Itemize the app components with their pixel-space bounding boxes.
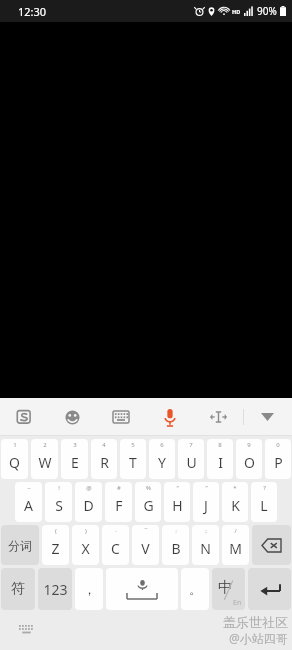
button[interactable]: Space [106, 568, 178, 610]
button[interactable]: ¯ [132, 525, 159, 565]
staticText: P [274, 453, 283, 472]
button[interactable]: 2 [31, 439, 58, 479]
button[interactable]: 123 [38, 568, 72, 610]
staticText: ) [85, 527, 87, 535]
staticText: 90% [257, 4, 277, 18]
staticText: * [233, 484, 237, 492]
button[interactable]: Sogou [0, 398, 48, 436]
staticText: / [234, 527, 237, 535]
button[interactable]: 6 [149, 439, 175, 479]
staticText: 1 [13, 441, 17, 449]
staticText: 8 [218, 441, 222, 449]
button[interactable]: ( [42, 525, 69, 565]
staticText: ; [205, 527, 207, 535]
staticText: ! [58, 484, 60, 492]
button[interactable]: 0 [265, 439, 291, 479]
button[interactable]: ; [192, 525, 219, 565]
button[interactable]: ! [45, 482, 72, 522]
staticText: Z [51, 539, 60, 558]
staticText: 4 [102, 441, 106, 449]
button[interactable]: @ [75, 482, 102, 522]
button[interactable]: ” [193, 482, 219, 522]
button[interactable]: ， [75, 568, 103, 610]
staticText: J [204, 496, 208, 515]
button[interactable]: 4 [91, 439, 117, 479]
button[interactable]: Hide keyboard [243, 398, 292, 436]
button[interactable]: 7 [178, 439, 204, 479]
button[interactable]: % [135, 482, 161, 522]
staticText: % [146, 484, 151, 492]
staticText: 123 [43, 580, 68, 599]
other: Backspace [252, 525, 291, 565]
staticText: 12:30 [18, 4, 47, 19]
staticText: 分词 [8, 538, 32, 553]
staticText: B [171, 539, 181, 558]
staticText: 9 [247, 441, 251, 449]
staticText: E [71, 453, 79, 472]
button[interactable]: ? [251, 482, 277, 522]
staticText: @小站四哥 [229, 630, 288, 646]
button[interactable]: Backspace [252, 525, 291, 565]
staticText: I [218, 453, 223, 472]
staticText: 7 [189, 441, 193, 449]
staticText: H [172, 496, 183, 515]
staticText: # [117, 484, 121, 492]
staticText: @ [86, 484, 92, 492]
button[interactable]: 分词 [1, 525, 39, 565]
staticText: A [24, 496, 33, 515]
staticText: ? [263, 484, 266, 492]
button[interactable]: Emoji [48, 398, 96, 436]
button[interactable]: * [222, 482, 248, 522]
staticText: O [244, 453, 255, 472]
staticText: V [141, 539, 150, 558]
staticText: R [100, 453, 109, 472]
button[interactable]: : [162, 525, 189, 565]
other: Enter [248, 568, 291, 610]
staticText: ( [55, 527, 57, 535]
button[interactable]: Keyboard layout [96, 398, 145, 436]
button[interactable]: 8 [207, 439, 233, 479]
staticText: 符 [11, 580, 25, 598]
staticText: HD [232, 8, 241, 15]
button[interactable]: 中 [212, 568, 245, 610]
button[interactable]: 3 [61, 439, 88, 479]
staticText: ¯ [144, 527, 148, 535]
staticText: 。 [189, 581, 202, 597]
button[interactable]: 5 [120, 439, 146, 479]
button[interactable]: 1 [1, 439, 28, 479]
staticText: · [115, 527, 117, 535]
button[interactable]: Enter [248, 568, 291, 610]
staticText: N [200, 539, 211, 558]
button[interactable]: · [102, 525, 129, 565]
staticText: F [115, 496, 123, 515]
staticText: L [260, 496, 268, 515]
button[interactable]: ~ [15, 482, 42, 522]
staticText: W [38, 453, 52, 472]
button[interactable]: Move cursor [194, 398, 243, 436]
staticText: “ [176, 484, 179, 492]
button[interactable]: 符 [1, 568, 35, 610]
staticText: 0 [276, 441, 280, 449]
staticText: U [186, 453, 197, 472]
button[interactable]: Voice input [145, 398, 194, 436]
button[interactable]: 。 [181, 568, 209, 610]
button[interactable]: ) [72, 525, 99, 565]
button[interactable]: # [105, 482, 132, 522]
staticText: 2 [43, 441, 47, 449]
staticText: ~ [27, 484, 31, 492]
staticText: ” [205, 484, 208, 492]
staticText: ， [83, 581, 96, 597]
button[interactable]: / [222, 525, 249, 565]
staticText: 5 [131, 441, 135, 449]
staticText: : [175, 527, 177, 535]
staticText: 盖乐世社区 [223, 614, 288, 630]
staticText: 3 [73, 441, 77, 449]
button[interactable]: Switch keyboard [14, 618, 38, 642]
staticText: Q [9, 453, 20, 472]
staticText: En [233, 598, 242, 608]
button[interactable]: 9 [236, 439, 262, 479]
staticText: Y [158, 453, 166, 472]
button[interactable]: “ [164, 482, 190, 522]
staticText: C [111, 539, 120, 558]
staticText: S [55, 496, 63, 515]
